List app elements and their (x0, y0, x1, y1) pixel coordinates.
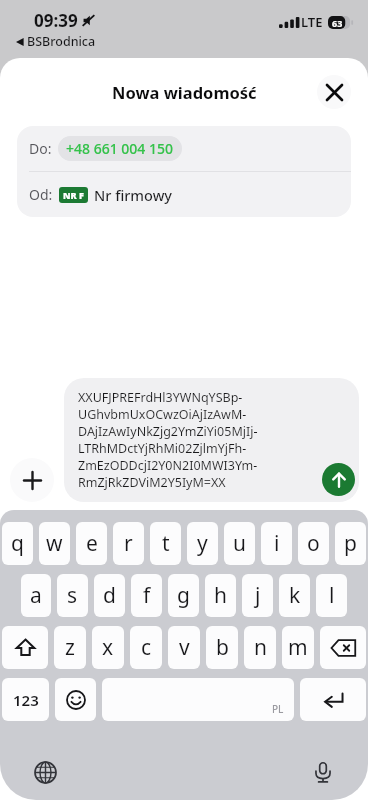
button[interactable]: c (130, 626, 162, 669)
button[interactable]: Zamknij (317, 75, 351, 109)
staticText: 09:39 (34, 9, 78, 32)
button[interactable]: Od: (17, 172, 351, 217)
staticText: i (274, 529, 280, 558)
button[interactable]: p (335, 522, 366, 565)
button[interactable]: z (54, 626, 86, 669)
button[interactable]: u (224, 522, 255, 565)
staticText: XXUFJPREFrdHl3YWNqYSBp- (78, 389, 243, 406)
button[interactable]: Enter (300, 678, 366, 721)
button[interactable]: m (282, 626, 314, 669)
staticText: Od: (29, 185, 53, 204)
button[interactable]: i (261, 522, 292, 565)
button[interactable]: s (57, 574, 88, 617)
staticText: t (162, 529, 170, 558)
staticText: 123 (13, 690, 39, 710)
staticText: l (329, 581, 335, 610)
button[interactable]: a (21, 574, 51, 617)
staticText: j (255, 581, 261, 610)
staticText: m (288, 633, 308, 662)
staticText: b (216, 633, 229, 662)
button[interactable]: d (94, 574, 125, 617)
staticText: UGhvbmUxOCwzOiAjIzAwM- (78, 406, 247, 423)
staticText: n (254, 633, 267, 662)
button[interactable]: Wyślij (322, 463, 355, 496)
staticText: NR F (63, 189, 84, 201)
staticText: BSBrodnica (27, 33, 96, 50)
button[interactable]: Zmień język (28, 755, 62, 789)
button[interactable]: q (2, 522, 33, 565)
button[interactable]: Emoji (55, 678, 96, 721)
staticText: p (344, 529, 357, 558)
staticText: c (141, 633, 152, 662)
button[interactable]: b (206, 626, 238, 669)
button[interactable]: n (244, 626, 276, 669)
staticText: ZmEzODDcjI2Y0N2I0MWI3Ym- (78, 457, 258, 474)
staticText: a (30, 581, 42, 610)
staticText: 63 (332, 17, 343, 29)
button[interactable]: PL (102, 678, 294, 721)
button[interactable]: r (113, 522, 144, 565)
staticText: o (307, 529, 320, 558)
staticText: PL (272, 702, 284, 716)
staticText: x (102, 633, 114, 662)
staticText: +48 661 004 150 (66, 139, 174, 158)
staticText: k (289, 581, 301, 610)
button[interactable]: f (131, 574, 162, 617)
button[interactable]: y (187, 522, 218, 565)
staticText: q (11, 529, 24, 558)
staticText: h (214, 581, 227, 610)
button[interactable]: v (168, 626, 200, 669)
button[interactable]: w (39, 522, 70, 565)
staticText: d (103, 581, 116, 610)
staticText: Nr firmowy (94, 185, 173, 205)
button[interactable]: g (168, 574, 199, 617)
staticText: w (46, 529, 63, 558)
button[interactable]: e (76, 522, 107, 565)
staticText: Nowa wiadomość (112, 81, 257, 103)
button[interactable]: o (298, 522, 329, 565)
staticText: r (124, 529, 133, 558)
button[interactable]: l (316, 574, 347, 617)
staticText: s (67, 581, 78, 610)
staticText: Do: (29, 139, 52, 158)
staticText: z (65, 633, 75, 662)
button[interactable]: Do: (17, 126, 351, 171)
button[interactable]: 123 (2, 678, 49, 721)
button[interactable]: XXUFJPREFrdHl3YWNqYSBp- (64, 378, 359, 502)
button[interactable]: j (242, 574, 273, 617)
staticText: LTRhMDctYjRhMi02ZjlmYjFh- (78, 440, 247, 457)
button[interactable]: k (279, 574, 310, 617)
staticText: g (177, 581, 190, 610)
staticText: v (179, 633, 190, 662)
staticText: DAjIzAwIyNkZjg2YmZiYi05MjIj- (78, 423, 258, 440)
button[interactable]: h (205, 574, 236, 617)
button[interactable]: Dodaj załącznik (10, 458, 54, 502)
button[interactable]: Shift (2, 626, 48, 669)
button[interactable]: t (150, 522, 181, 565)
staticText: e (86, 529, 98, 558)
staticText: RmZjRkZDViM2Y5IyM=XX (78, 474, 226, 491)
staticText: y (197, 529, 208, 558)
staticText: u (233, 529, 246, 558)
staticText: LTE (301, 13, 323, 31)
button[interactable]: Dyktowanie (306, 755, 340, 789)
staticText: f (143, 581, 151, 610)
button[interactable]: x (92, 626, 124, 669)
button[interactable]: Backspace (320, 626, 366, 669)
